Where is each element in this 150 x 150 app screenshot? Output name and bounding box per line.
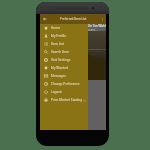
button[interactable]: My Wanted	[40, 64, 88, 72]
button[interactable]: Item List	[40, 40, 88, 48]
staticText: Logout	[51, 90, 62, 94]
button[interactable]: Change Preference	[40, 80, 88, 88]
staticText: Item List	[51, 42, 65, 46]
staticText: My Wanted	[51, 66, 68, 70]
button[interactable]: Back	[42, 16, 48, 22]
staticText: On Tue Wishlist, the	[88, 24, 106, 28]
staticText: event ...	[88, 28, 98, 31]
button[interactable]: My Profile	[40, 32, 88, 40]
button[interactable]: Home	[40, 24, 88, 32]
button[interactable]: Price Market Catalog	[40, 96, 88, 104]
staticText: Lorem ipsum dolor sit	[88, 47, 106, 50]
button[interactable]: Search Item	[40, 48, 88, 56]
staticText: Messages	[51, 74, 66, 78]
button[interactable]: Logout	[40, 88, 88, 96]
staticText: Preferred Item List	[60, 17, 87, 21]
button[interactable]: More options	[100, 17, 105, 22]
button[interactable]: Messages	[40, 72, 88, 80]
staticText: Price Market Catalog	[51, 98, 83, 102]
staticText: My Profile	[51, 34, 66, 38]
staticText: Unit Settings	[51, 58, 71, 62]
staticText: Home	[51, 26, 61, 30]
staticText: Change Preference	[51, 82, 80, 86]
button[interactable]: Unit Settings	[40, 56, 88, 64]
staticText: Search Item	[51, 50, 69, 54]
